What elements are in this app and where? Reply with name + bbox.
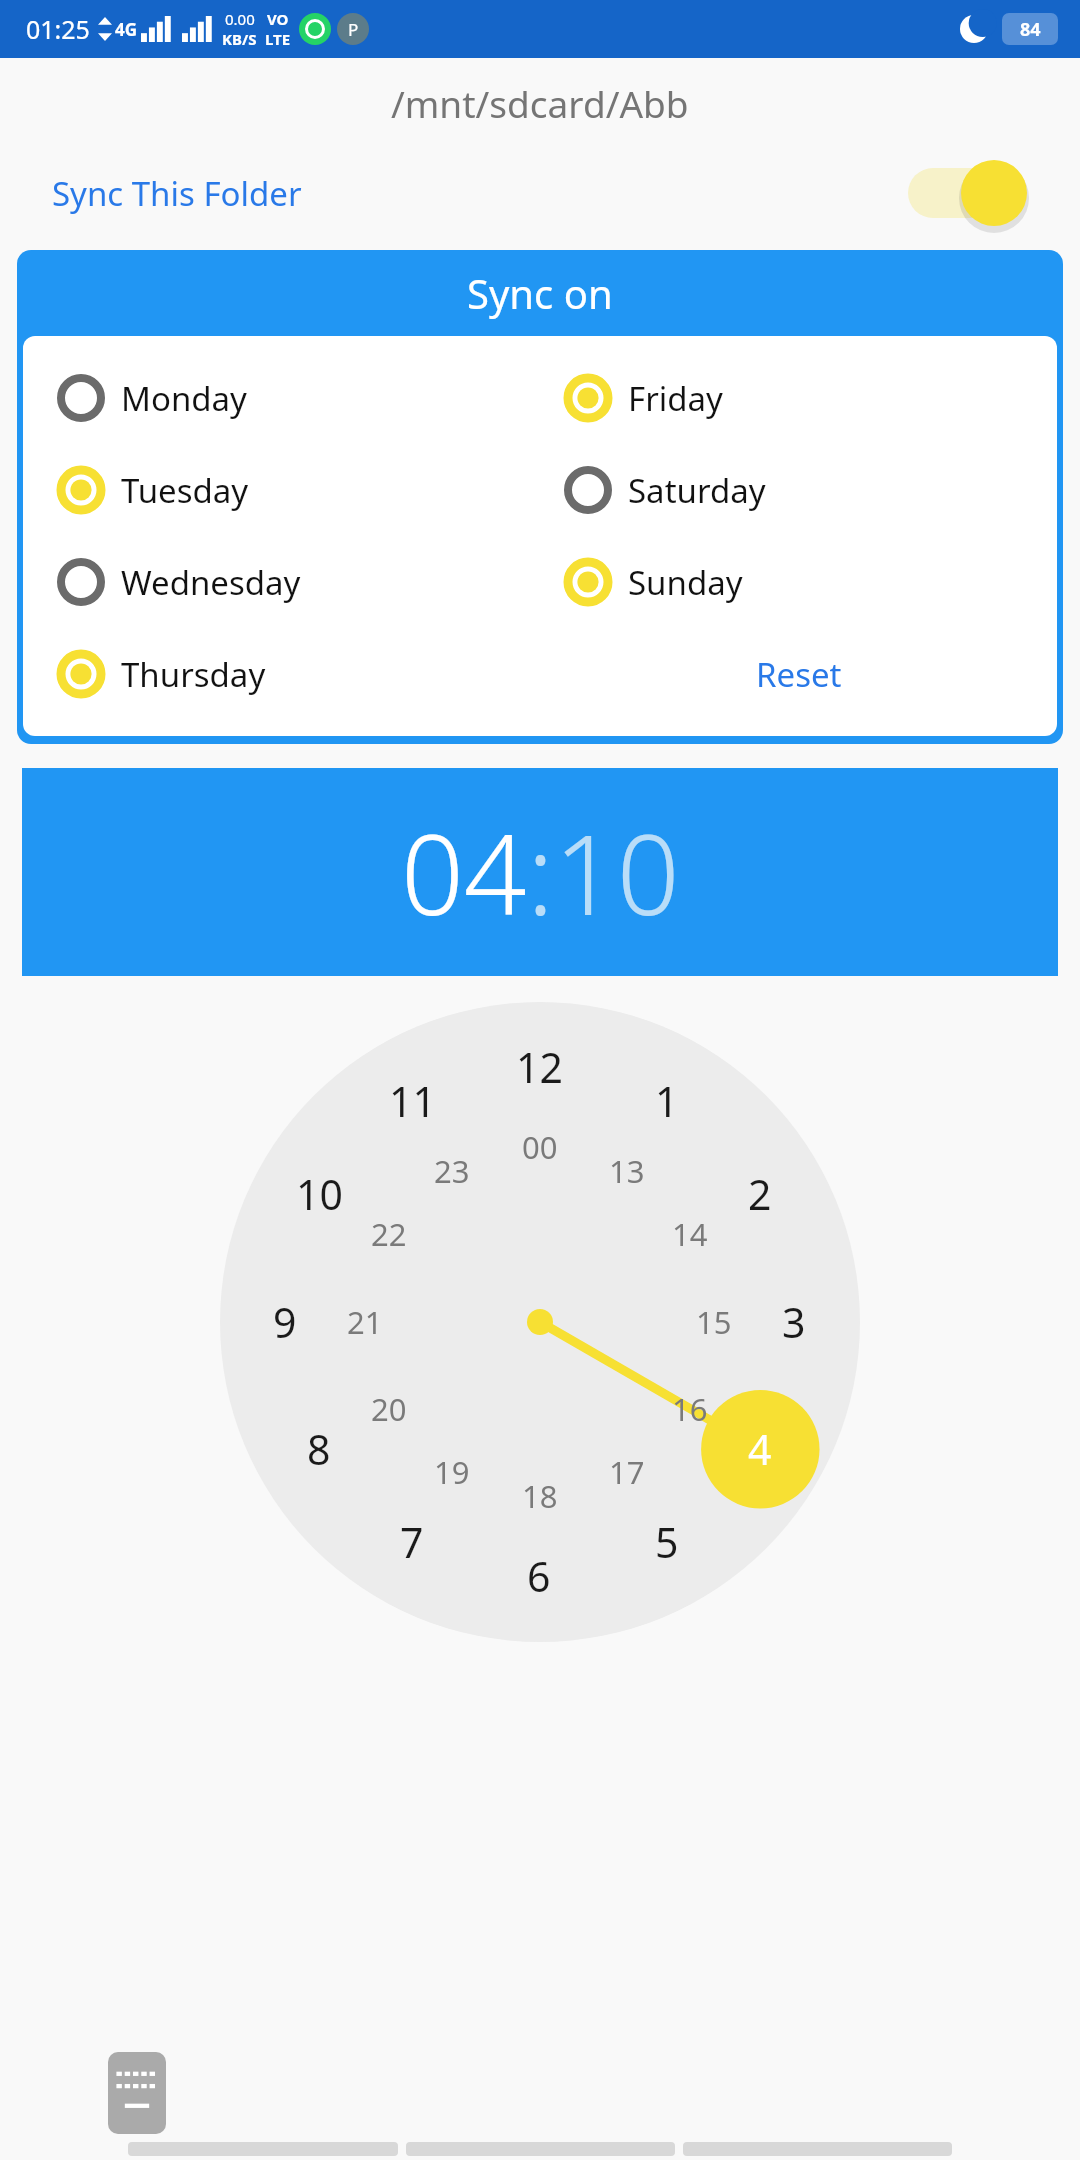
staticText: 23 [434,1150,470,1192]
staticText: Wednesday [121,560,301,605]
staticText: Friday [628,376,723,421]
staticText: 5 [655,1514,679,1570]
button[interactable]: Monday [55,352,247,444]
staticText: 04 [401,797,527,947]
staticText: 8 [307,1421,331,1477]
staticText: Sync on [467,266,613,320]
button[interactable]: 04 [401,797,527,947]
staticText: Saturday [628,468,766,513]
staticText: 17 [609,1451,645,1493]
button[interactable]: Saturday [562,444,766,536]
button[interactable]: Hour clock dial, 4 selected [220,1002,860,1642]
staticText: 84 [1020,17,1041,42]
staticText: 9 [273,1294,297,1350]
staticText: 14 [672,1213,708,1255]
staticText: 10 [296,1166,343,1222]
staticText: 00 [522,1126,558,1168]
staticText: Reset [756,652,842,697]
staticText: 22 [371,1213,407,1255]
staticText: 7 [400,1514,424,1570]
staticText: 4 [748,1421,772,1477]
staticText: LTE [265,29,291,49]
staticText: 0.00 [225,9,255,29]
button[interactable]: Switch to keyboard input [108,2052,166,2134]
staticText: 11 [389,1073,436,1129]
staticText: 21 [347,1301,383,1343]
staticText: 4G [115,18,138,41]
button[interactable]: Wednesday [55,536,301,628]
button[interactable]: Friday [562,352,723,444]
staticText: 20 [371,1388,407,1430]
staticText: : [527,797,554,947]
staticText: KB/S [222,29,257,49]
staticText: Sunday [628,560,743,605]
staticText: Sync This Folder [52,171,302,216]
staticText: 2 [748,1166,772,1222]
staticText: 19 [434,1451,470,1493]
button[interactable]: Sunday [562,536,743,628]
staticText: 01:25 [26,12,90,46]
staticText: 12 [516,1039,563,1095]
staticText: P [348,18,359,41]
staticText: VO [267,9,289,29]
button[interactable]: 10 [554,797,680,947]
staticText: Monday [121,376,247,421]
button[interactable]: Thursday [55,628,266,720]
staticText: Tuesday [121,468,249,513]
staticText: Thursday [121,652,266,697]
staticText: 13 [609,1150,645,1192]
staticText: 10 [554,797,680,947]
staticText: 18 [522,1475,558,1517]
button[interactable]: Tuesday [55,444,249,536]
staticText: 1 [655,1073,679,1129]
button[interactable]: Reset [736,640,862,709]
staticText: 16 [672,1388,708,1430]
staticText: 6 [527,1548,551,1604]
staticText: 3 [782,1294,806,1350]
staticText: /mnt/sdcard/Abb [391,78,689,128]
staticText: 15 [696,1301,732,1343]
button[interactable]: Sync This Folder [0,158,1080,228]
